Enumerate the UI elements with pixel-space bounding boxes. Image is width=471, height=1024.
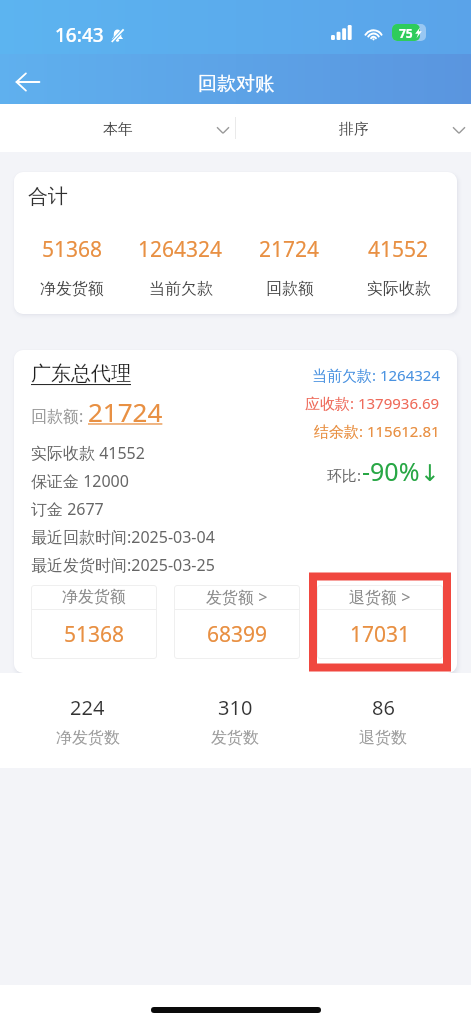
staticText: 51368 [42, 235, 103, 264]
staticText: 发货数 [211, 728, 259, 748]
button[interactable]: 51368 [18, 235, 126, 299]
staticText: 310 [218, 694, 253, 721]
button[interactable]: 排序 [236, 104, 471, 152]
staticText: 224 [70, 694, 105, 721]
button[interactable]: 41552 [344, 235, 453, 299]
staticText: 净发货数 [56, 728, 120, 748]
staticText: 退货数 [359, 728, 407, 748]
staticText: 最近发货时间:2025-03-25 [31, 554, 215, 576]
staticText: 回款对账 [198, 72, 274, 96]
staticText: 回款额: [31, 405, 88, 427]
staticText: 当前欠款: 1264324 [312, 365, 440, 385]
staticText: 75 [399, 25, 413, 41]
button[interactable]: 退货额 > [317, 585, 443, 659]
staticText: 68399 [207, 620, 268, 649]
staticText: 21724 [259, 235, 320, 264]
staticText: 净发货额 [62, 587, 126, 607]
staticText: 当前欠款 [149, 279, 213, 299]
button[interactable]: 发货额 > [174, 585, 300, 659]
staticText: 环比: [327, 465, 362, 485]
staticText: 退货额 > [349, 586, 411, 608]
button[interactable]: 224 [14, 694, 161, 748]
button[interactable]: 21724 [235, 235, 344, 299]
staticText: 实际收款 [367, 279, 431, 299]
staticText: 17031 [350, 620, 411, 649]
staticText: -90% [362, 454, 420, 488]
staticText: 实际收款 41552 [31, 442, 145, 464]
staticText: 净发货额 [40, 279, 104, 299]
staticText: 1264324 [138, 235, 223, 264]
staticText: 41552 [368, 235, 429, 264]
staticText: ↓ [420, 460, 440, 487]
button[interactable]: 86 [309, 694, 457, 748]
staticText: 订金 2677 [31, 498, 104, 520]
staticText: 21724 [88, 394, 163, 429]
button[interactable]: 净发货额 [31, 585, 157, 659]
staticText: 最近回款时间:2025-03-04 [31, 526, 215, 548]
button[interactable]: 本年 [0, 104, 235, 152]
staticText: 16:43 [55, 22, 104, 48]
staticText: 发货额 > [206, 586, 268, 608]
staticText: 保证金 12000 [31, 470, 129, 492]
staticText: 应收款: 1379936.69 [305, 393, 440, 413]
staticText: 本年 [103, 120, 133, 139]
button[interactable]: 310 [161, 694, 309, 748]
staticText: 合计 [28, 184, 68, 209]
staticText: 广东总代理 [31, 361, 131, 386]
staticText: 回款额 [266, 279, 314, 299]
button[interactable]: 1264324 [126, 235, 235, 299]
button[interactable]: Back [4, 59, 52, 104]
staticText: 86 [372, 694, 395, 721]
staticText: 排序 [339, 120, 369, 139]
staticText: 51368 [64, 620, 125, 649]
staticText: 结余款: 115612.81 [314, 421, 440, 441]
